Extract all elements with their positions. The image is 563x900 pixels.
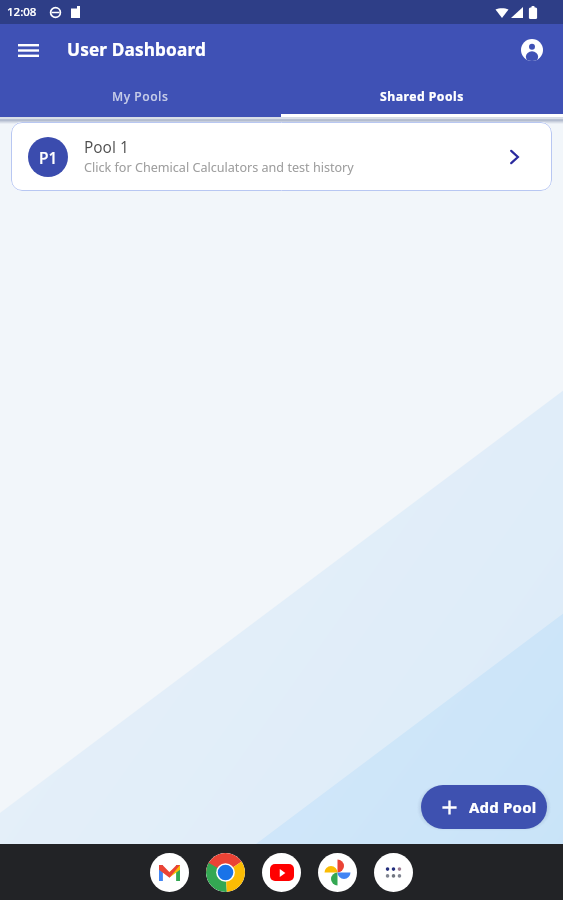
button[interactable]: Add Pool <box>421 785 547 829</box>
button[interactable]: Gmail <box>150 853 189 892</box>
button[interactable]: Shared Pools <box>281 75 563 117</box>
button[interactable]: YouTube <box>262 853 301 892</box>
staticText: P1 <box>39 147 58 168</box>
button[interactable]: Open navigation menu <box>8 30 48 70</box>
button[interactable]: Account <box>512 30 552 70</box>
staticText: Add Pool <box>469 797 537 817</box>
staticText: Pool 1 <box>84 137 129 158</box>
button[interactable]: P1 <box>11 122 552 191</box>
button[interactable]: Chrome <box>206 853 245 892</box>
button[interactable]: All apps <box>374 853 413 892</box>
staticText: Click for Chemical Calculators and test … <box>84 159 354 176</box>
button[interactable]: Photos <box>318 853 357 892</box>
staticText: My Pools <box>112 88 169 105</box>
staticText: Shared Pools <box>380 88 464 105</box>
staticText: User Dashboard <box>67 38 206 61</box>
staticText: 12:08 <box>7 4 37 20</box>
button[interactable]: My Pools <box>0 75 281 117</box>
